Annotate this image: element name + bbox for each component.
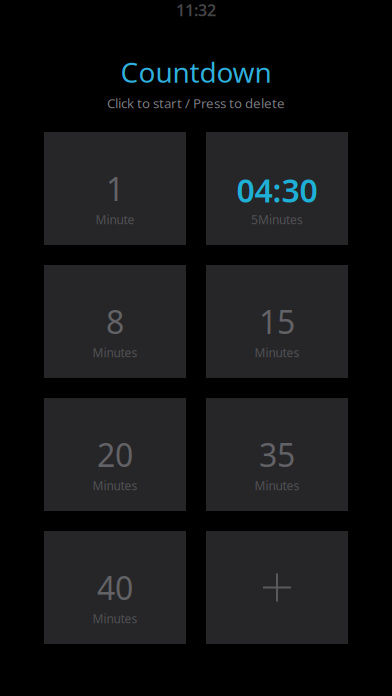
- button[interactable]: 1: [44, 132, 186, 245]
- staticText: 8: [106, 300, 124, 343]
- button[interactable]: Add timer: [206, 531, 348, 644]
- staticText: Minutes: [92, 477, 137, 493]
- button[interactable]: 40: [44, 531, 186, 644]
- staticText: Minutes: [92, 344, 137, 360]
- staticText: Click to start / Press to delete: [107, 94, 285, 112]
- button[interactable]: 8: [44, 265, 186, 378]
- staticText: Minutes: [254, 477, 299, 493]
- staticText: 20: [97, 433, 133, 476]
- staticText: 35: [259, 433, 295, 476]
- staticText: Minutes: [254, 344, 299, 360]
- staticText: Minutes: [92, 610, 137, 626]
- staticText: 11:32: [176, 0, 216, 21]
- staticText: 04:30: [236, 169, 317, 211]
- staticText: 1: [106, 167, 124, 210]
- button[interactable]: 15: [206, 265, 348, 378]
- button[interactable]: 35: [206, 398, 348, 511]
- staticText: Countdown: [120, 53, 271, 91]
- staticText: 40: [97, 566, 133, 609]
- staticText: Minute: [95, 211, 134, 227]
- staticText: 15: [259, 300, 295, 343]
- button[interactable]: 04:30: [206, 132, 348, 245]
- staticText: 5Minutes: [251, 211, 303, 227]
- button[interactable]: 20: [44, 398, 186, 511]
